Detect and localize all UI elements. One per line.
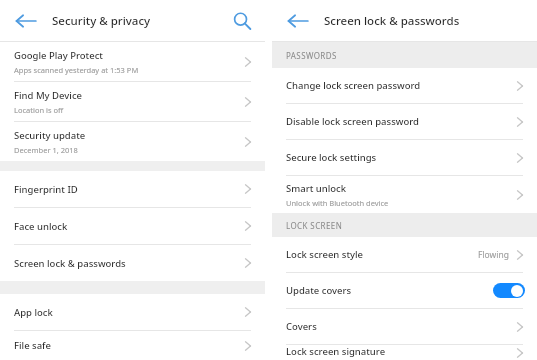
button[interactable]: Back (285, 11, 311, 31)
button[interactable]: Covers (272, 309, 537, 344)
staticText: File safe (14, 339, 51, 352)
staticText: Smart unlock (286, 182, 347, 195)
staticText: Flowing (478, 249, 509, 261)
staticText: Covers (286, 320, 317, 333)
staticText: Update covers (286, 284, 352, 297)
button[interactable]: Screen lock & passwords (0, 245, 265, 281)
button[interactable]: Face unlock (0, 208, 265, 244)
button[interactable]: Google Play Protect (0, 42, 265, 81)
button[interactable]: Change lock screen password (272, 68, 537, 103)
button[interactable]: App lock (0, 294, 265, 330)
staticText: Change lock screen password (286, 79, 421, 92)
staticText: Face unlock (14, 220, 68, 233)
staticText: December 1, 2018 (14, 145, 78, 155)
button[interactable]: Update covers (272, 273, 537, 308)
staticText: PASSWORDS (286, 50, 337, 61)
button[interactable]: Smart unlock (272, 176, 537, 213)
staticText: LOCK SCREEN (286, 220, 343, 231)
staticText: Location is off (14, 105, 64, 115)
button[interactable]: Fingerprint ID (0, 171, 265, 207)
staticText: Find My Device (14, 89, 83, 102)
staticText: Lock screen style (286, 248, 364, 261)
staticText: Apps scanned yesterday at 1:53 PM (14, 65, 139, 75)
staticText: Security update (14, 129, 86, 142)
staticText: Security & privacy (52, 13, 151, 29)
staticText: Disable lock screen password (286, 115, 419, 128)
staticText: Lock screen signature (286, 345, 386, 358)
staticText: Screen lock & passwords (14, 257, 126, 270)
staticText: Unlock with Bluetooth device (286, 198, 389, 208)
button[interactable]: Back (13, 11, 39, 31)
staticText: Fingerprint ID (14, 183, 78, 196)
button[interactable]: Disable lock screen password (272, 104, 537, 139)
button[interactable]: Lock screen style (272, 237, 537, 272)
button[interactable]: Find My Device (0, 82, 265, 121)
staticText: Screen lock & passwords (324, 13, 460, 29)
button[interactable]: Lock screen signature (272, 345, 537, 360)
button[interactable]: Search (231, 10, 253, 32)
staticText: Google Play Protect (14, 49, 103, 62)
button[interactable]: File safe (0, 331, 265, 360)
staticText: Secure lock settings (286, 151, 377, 164)
button[interactable]: Security update (0, 122, 265, 161)
staticText: App lock (14, 306, 53, 319)
button[interactable]: Secure lock settings (272, 140, 537, 175)
